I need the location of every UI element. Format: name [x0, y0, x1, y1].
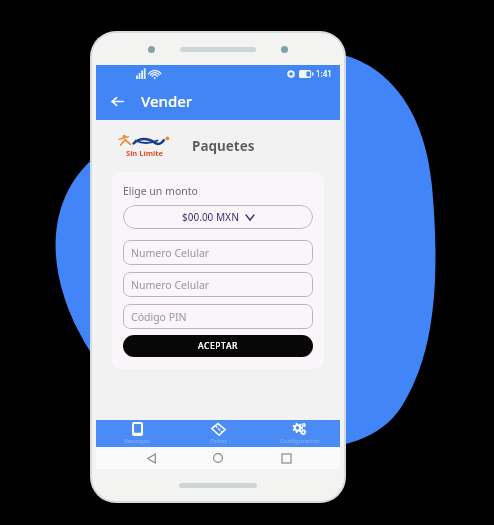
button[interactable]: Home — [205, 447, 231, 469]
staticText: ACEPTAR — [198, 340, 239, 352]
button[interactable]: ACEPTAR — [123, 335, 313, 357]
staticText: Numero Celular — [131, 246, 210, 260]
button[interactable]: Back — [102, 86, 132, 116]
button[interactable]: Numero Celular — [123, 240, 313, 265]
staticText: 1:41 — [316, 68, 332, 79]
staticText: Código PIN — [131, 310, 187, 324]
button[interactable]: Numero Celular — [123, 272, 313, 297]
staticText: Vender — [141, 91, 193, 111]
staticText: $00.00 MXN — [182, 210, 239, 224]
staticText: Ticket — [210, 437, 227, 445]
button[interactable]: Recents — [273, 447, 299, 469]
staticText: Numero Celular — [131, 278, 210, 292]
button[interactable]: Back — [138, 447, 164, 469]
button[interactable]: Configuración — [259, 420, 340, 447]
button[interactable]: Recargas — [96, 420, 178, 447]
button[interactable]: Ticket — [178, 420, 259, 447]
staticText: Recargas — [124, 437, 150, 445]
button[interactable]: $00.00 MXN — [123, 205, 313, 229]
staticText: Paquetes — [192, 137, 255, 155]
staticText: Configuración — [280, 437, 320, 445]
staticText: Elige un monto — [123, 184, 198, 198]
button[interactable]: Código PIN — [123, 304, 313, 329]
staticText: Sin Límite — [126, 148, 163, 158]
